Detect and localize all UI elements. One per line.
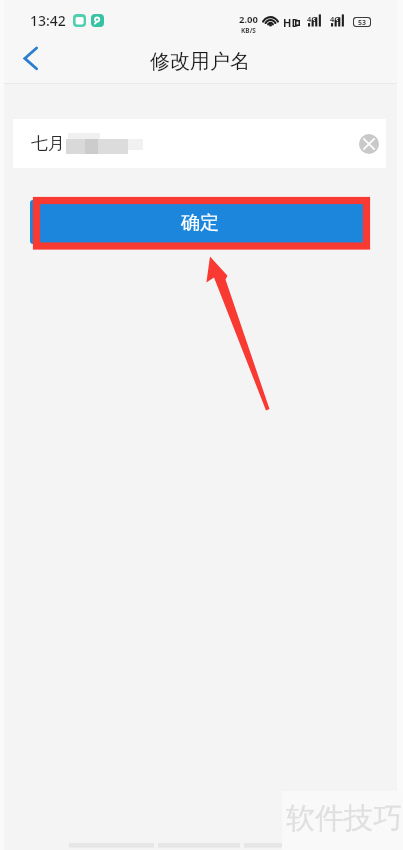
staticText: 53 (358, 18, 367, 26)
staticText: 软件技巧 (286, 800, 402, 837)
staticText: 修改用户名 (150, 49, 250, 74)
staticText: KB/S (241, 26, 256, 35)
button[interactable]: Clear text (354, 129, 384, 159)
button[interactable]: 确定 (30, 200, 363, 244)
staticText: 4G (307, 14, 317, 24)
button[interactable]: 七月 (13, 119, 386, 168)
staticText: 2.00 (239, 13, 258, 26)
staticText: 13:42 (30, 11, 66, 30)
staticText: 确定 (181, 211, 219, 235)
button[interactable]: Back (5, 39, 45, 79)
staticText: 4G (330, 14, 340, 24)
staticText: HD (283, 15, 300, 30)
staticText: 七月 (31, 133, 65, 154)
